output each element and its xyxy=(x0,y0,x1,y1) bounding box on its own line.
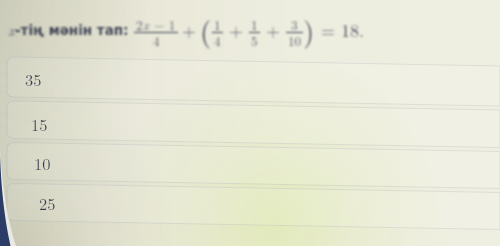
staticText: 25 xyxy=(39,191,56,214)
staticText: ) xyxy=(303,9,315,50)
staticText: 10 xyxy=(34,151,51,174)
button[interactable]: 15 xyxy=(7,103,500,143)
staticText: + xyxy=(260,17,286,43)
staticText: 5 xyxy=(251,31,258,49)
button[interactable]: 25 xyxy=(7,183,500,222)
staticText: = 18. xyxy=(315,17,364,43)
staticText: + xyxy=(182,17,197,43)
staticText: 15 xyxy=(31,112,48,135)
staticText: − 1 xyxy=(150,15,176,33)
staticText: ( xyxy=(200,9,212,50)
staticText: + xyxy=(223,17,249,43)
staticText: 4 xyxy=(153,31,160,49)
staticText: 35 xyxy=(25,67,42,90)
button[interactable]: 35 xyxy=(7,58,500,99)
staticText: 3 xyxy=(291,15,298,33)
staticText: 1 xyxy=(214,15,221,33)
staticText: x xyxy=(143,15,150,33)
staticText: 1 xyxy=(251,15,258,33)
button[interactable]: 10 xyxy=(7,143,500,182)
staticText: -тің мәнін тап: xyxy=(15,22,129,38)
staticText: 2 xyxy=(136,15,143,33)
staticText: 10 xyxy=(288,31,301,49)
staticText: 4 xyxy=(214,31,221,49)
staticText: x xyxy=(8,19,15,40)
